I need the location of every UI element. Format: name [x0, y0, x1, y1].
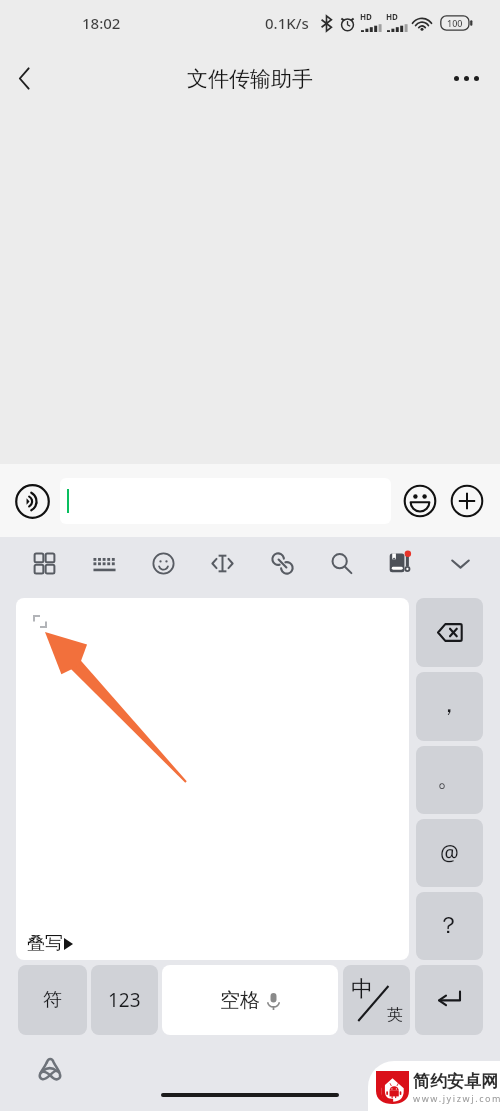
staticText: 。 — [437, 763, 461, 793]
button[interactable]: Keyboard layout — [75, 537, 134, 590]
staticText: 0.1K/s — [265, 13, 309, 33]
button[interactable]: 叠写 — [16, 598, 409, 960]
button[interactable]: ？ — [416, 892, 483, 960]
button[interactable]: 空格 — [162, 965, 338, 1035]
button[interactable]: Back — [0, 50, 48, 107]
staticText: 中 — [351, 975, 373, 1003]
staticText: ， — [437, 689, 461, 719]
button[interactable]: 符 — [18, 965, 87, 1035]
button[interactable]: Emoji — [134, 537, 193, 590]
button[interactable]: More functions — [446, 480, 488, 522]
staticText: 18:02 — [82, 13, 121, 33]
button[interactable]: Chinese English toggle — [343, 965, 410, 1035]
staticText: ？ — [437, 911, 460, 940]
button[interactable]: Enter — [415, 965, 483, 1035]
button[interactable]: ， — [416, 672, 483, 741]
staticText: 文件传输助手 — [187, 66, 313, 92]
staticText: www.jyizwj.com — [413, 1092, 500, 1104]
button[interactable]: 123 — [91, 965, 158, 1035]
staticText: 英 — [387, 1005, 403, 1025]
button[interactable]: @ — [416, 819, 483, 887]
button[interactable]: Input method settings — [37, 1057, 63, 1081]
button[interactable]: Panel grid — [15, 537, 74, 590]
staticText: 简约安卓网 — [413, 1071, 498, 1092]
button[interactable]: Hide keyboard — [431, 537, 490, 590]
button[interactable]: Emoji — [399, 480, 441, 522]
staticText: HD — [386, 11, 398, 22]
staticText: 123 — [108, 987, 141, 1013]
staticText: 100 — [447, 17, 463, 29]
button[interactable]: More options — [436, 50, 500, 107]
button[interactable]: Voice input — [10, 479, 54, 523]
button[interactable]: Backspace — [416, 598, 483, 667]
button[interactable]: Clipboard — [253, 537, 312, 590]
staticText: 空格 — [220, 988, 260, 1013]
staticText: 叠写 — [27, 932, 63, 955]
button[interactable]: Dictionary — [371, 537, 430, 590]
button[interactable]: 。 — [416, 746, 483, 814]
staticText: 符 — [43, 988, 62, 1012]
button[interactable]: Edit cursor — [193, 537, 252, 590]
button[interactable]: Search — [312, 537, 371, 590]
button[interactable] — [60, 478, 391, 524]
staticText: HD — [360, 11, 372, 22]
staticText: @ — [440, 839, 459, 868]
